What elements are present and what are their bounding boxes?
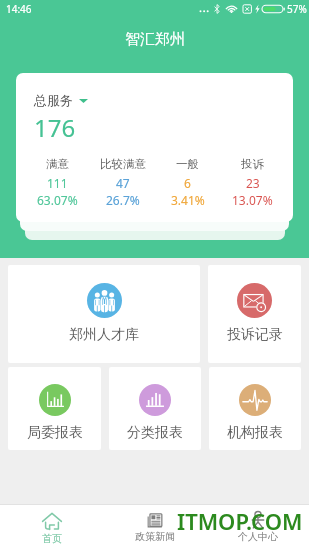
- button[interactable]: 机构报表: [209, 367, 301, 450]
- staticText: 投诉: [241, 157, 264, 171]
- button[interactable]: 首页: [0, 505, 103, 550]
- staticText: ITMOP.COM: [177, 506, 303, 536]
- staticText: 政策新闻: [135, 530, 175, 543]
- staticText: 分类报表: [127, 424, 183, 442]
- staticText: 57%: [287, 2, 307, 16]
- staticText: 满意: [46, 157, 69, 171]
- button[interactable]: 个人中心: [206, 505, 309, 550]
- staticText: 一般: [176, 157, 199, 171]
- staticText: 首页: [42, 532, 62, 545]
- staticText: 比较满意: [100, 157, 146, 171]
- staticText: 总服务: [34, 92, 73, 108]
- staticText: 智汇郑州: [125, 30, 185, 49]
- staticText: 111: [47, 175, 68, 191]
- staticText: 63.07%: [37, 192, 78, 208]
- staticText: 个人中心: [238, 530, 278, 543]
- staticText: 23: [246, 175, 260, 191]
- staticText: 3.41%: [171, 192, 205, 208]
- button[interactable]: 局委报表: [8, 367, 101, 450]
- staticText: 47: [116, 175, 130, 191]
- staticText: 机构报表: [227, 424, 283, 442]
- button[interactable]: 分类报表: [109, 367, 201, 450]
- staticText: 郑州人才库: [69, 326, 139, 344]
- staticText: 局委报表: [27, 424, 83, 442]
- staticText: 26.7%: [106, 192, 140, 208]
- staticText: 13.07%: [232, 192, 273, 208]
- staticText: 176: [34, 111, 76, 144]
- button[interactable]: 政策新闻: [103, 505, 206, 550]
- staticText: 投诉记录: [227, 326, 283, 344]
- button[interactable]: 郑州人才库: [8, 265, 200, 363]
- staticText: 6: [184, 175, 191, 191]
- button[interactable]: 投诉记录: [208, 265, 301, 363]
- staticText: 14:46: [6, 2, 32, 16]
